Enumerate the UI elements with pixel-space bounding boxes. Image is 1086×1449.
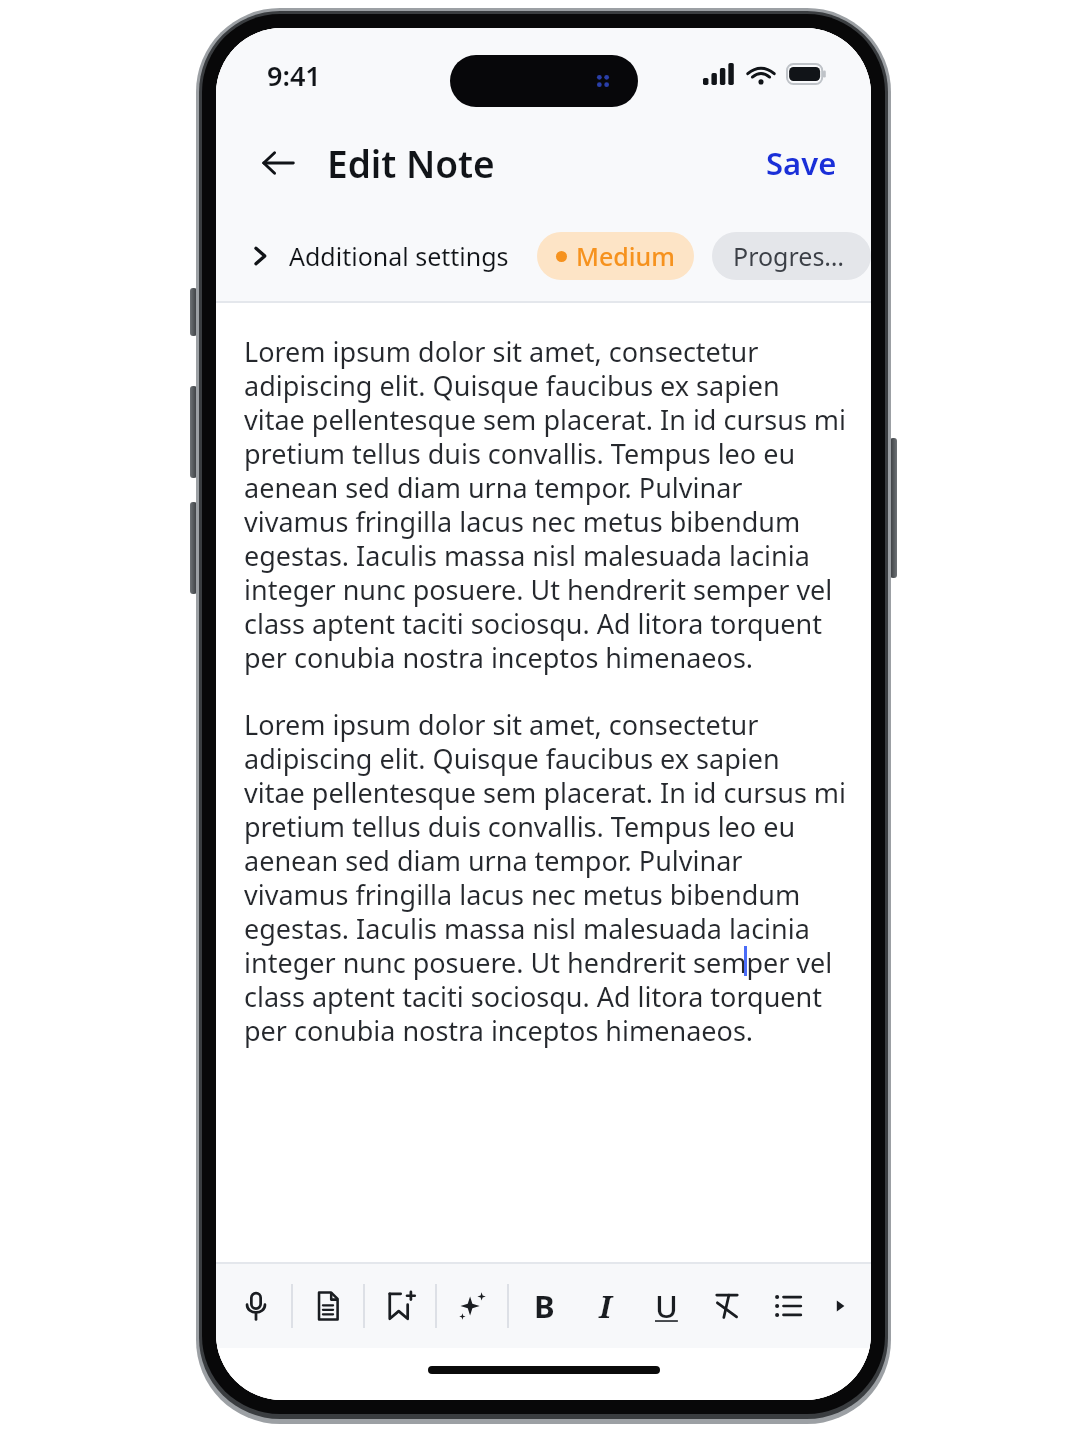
button[interactable]: More [823, 1278, 857, 1334]
staticText: Medium [576, 239, 675, 273]
button[interactable]: AI assist [446, 1276, 498, 1336]
staticText: 9:41 [267, 57, 321, 94]
staticText: Edit Note [327, 138, 495, 188]
staticText: Additional settings [289, 239, 509, 273]
button[interactable]: Bulleted list [762, 1276, 814, 1336]
button[interactable]: U [640, 1276, 692, 1336]
button[interactable]: Voice input [230, 1276, 282, 1336]
button[interactable]: Progress note, in... [712, 232, 871, 280]
staticText: Lorem ipsum dolor sit amet, consectetur … [244, 333, 847, 676]
button[interactable]: Medium [537, 232, 694, 280]
staticText: Lorem ipsum dolor sit amet, consectetur … [244, 706, 847, 1049]
button[interactable]: I [579, 1276, 631, 1336]
staticText: Save [766, 142, 837, 184]
button[interactable]: Template [302, 1276, 354, 1336]
button[interactable]: Additional settings [236, 231, 521, 281]
staticText: I [599, 1285, 612, 1327]
staticText: B [534, 1285, 555, 1327]
button[interactable]: B [518, 1276, 570, 1336]
button[interactable]: Back [250, 135, 306, 191]
staticText: Progress note, in... [733, 239, 850, 273]
button[interactable]: Clear formatting [701, 1276, 753, 1336]
button[interactable]: Save [756, 136, 847, 190]
button[interactable]: Bookmark [374, 1276, 426, 1336]
staticText: U [655, 1285, 678, 1327]
